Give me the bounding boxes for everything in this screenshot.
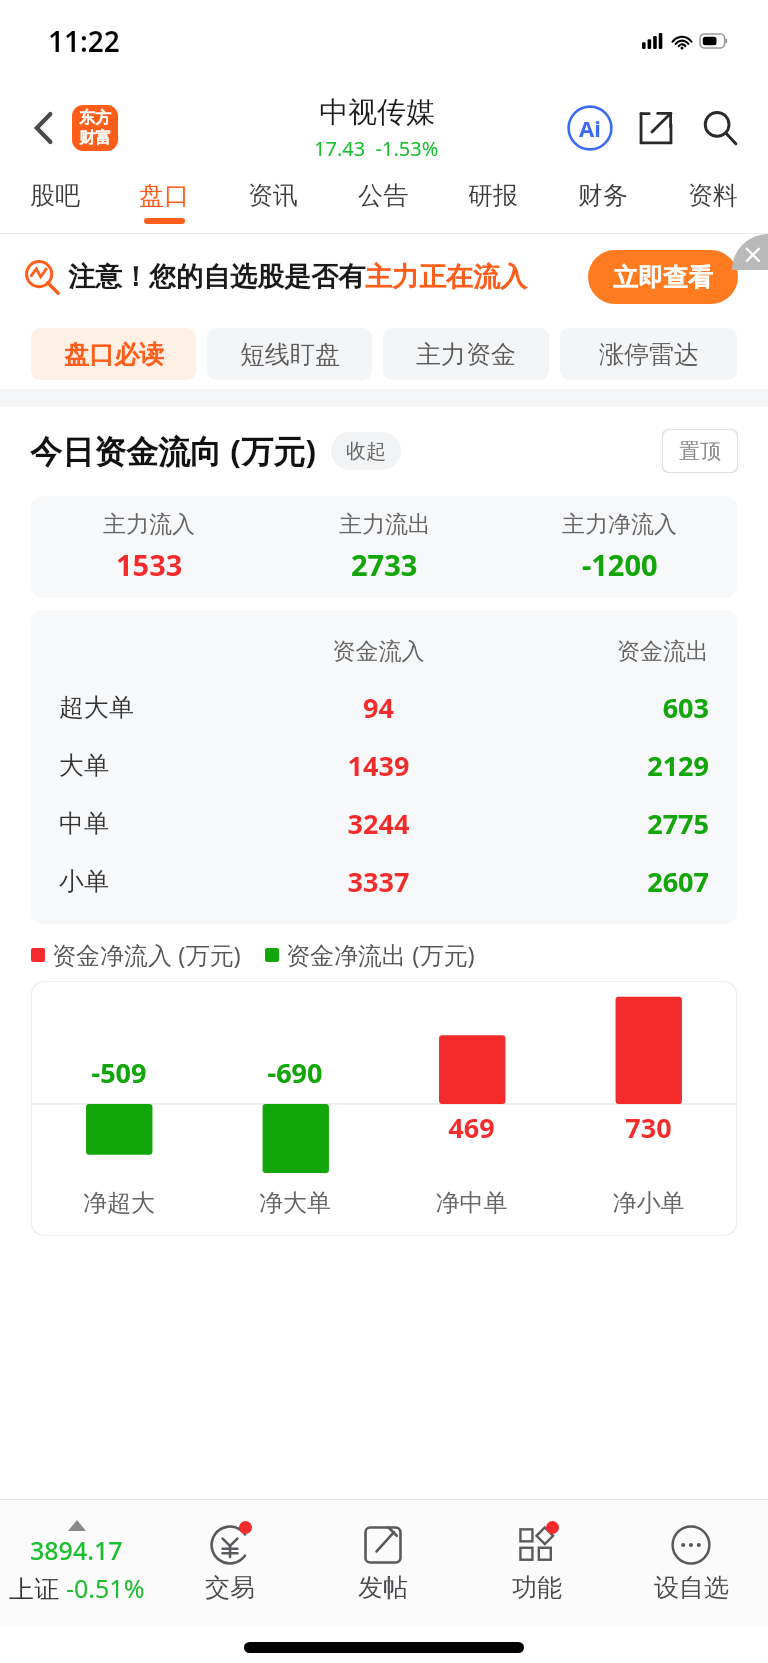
staticText: 净超大 <box>31 1188 207 1218</box>
button[interactable]: 发帖 <box>306 1500 460 1625</box>
staticText: -1200 <box>582 545 658 584</box>
staticText: 收起 <box>346 439 386 464</box>
staticText: -690 <box>207 1054 383 1091</box>
staticText: 上证 <box>9 1571 66 1605</box>
staticText: 股吧 <box>30 180 80 211</box>
button[interactable]: 股吧 <box>0 170 109 233</box>
staticText: 中单 <box>59 808 265 839</box>
staticText: 2129 <box>492 747 709 784</box>
button[interactable]: 资金流入 <box>31 610 737 924</box>
staticText: 94 <box>265 689 492 726</box>
staticText: 研报 <box>468 180 518 211</box>
staticText: 交易 <box>205 1572 255 1603</box>
button[interactable]: 资料 <box>658 170 768 233</box>
button[interactable]: Back <box>22 106 66 150</box>
button[interactable]: 盘口 <box>109 170 218 233</box>
staticText: 公告 <box>358 180 408 211</box>
button[interactable]: 立即查看 <box>588 250 738 304</box>
button[interactable]: 公告 <box>328 170 438 233</box>
staticText: 今日资金流向 (万元) <box>30 429 317 473</box>
button[interactable]: 3894.17 <box>0 1500 153 1625</box>
button[interactable]: 涨停雷达 <box>560 328 737 380</box>
staticText: Ai <box>579 113 601 143</box>
staticText: 1533 <box>116 545 183 584</box>
staticText: 东方 <box>79 108 111 128</box>
staticText: 2607 <box>492 863 709 900</box>
staticText: 资金净流出 (万元) <box>286 938 475 971</box>
staticText: 11:22 <box>48 22 120 60</box>
button[interactable]: 财务 <box>548 170 658 233</box>
staticText: 1439 <box>265 747 492 784</box>
button[interactable]: 收起 <box>331 432 401 470</box>
button[interactable]: 资讯 <box>218 170 328 233</box>
staticText: -509 <box>31 1054 207 1091</box>
button[interactable]: Close <box>732 234 768 270</box>
staticText: 大单 <box>59 750 265 781</box>
staticText: 3337 <box>265 863 492 900</box>
button[interactable]: AI assistant <box>564 102 616 154</box>
staticText: 立即查看 <box>613 262 713 293</box>
staticText: 净小单 <box>560 1188 737 1218</box>
button[interactable]: Share <box>630 102 682 154</box>
button[interactable]: 置顶 <box>662 429 738 473</box>
button[interactable]: 功能 <box>460 1500 614 1625</box>
staticText: 2775 <box>492 805 709 842</box>
button[interactable]: 短线盯盘 <box>207 328 372 380</box>
staticText: 资料 <box>688 180 738 211</box>
staticText: 设自选 <box>654 1572 729 1603</box>
staticText: 超大单 <box>59 692 265 723</box>
button[interactable]: 交易 <box>153 1500 306 1625</box>
staticText: 3244 <box>265 805 492 842</box>
staticText: 发帖 <box>358 1572 408 1603</box>
button[interactable]: -509 <box>31 981 737 1236</box>
button[interactable]: 设自选 <box>614 1500 768 1625</box>
staticText: 17.43 -1.53% <box>314 135 439 162</box>
staticText: 净大单 <box>207 1188 383 1218</box>
staticText: 730 <box>560 1109 737 1146</box>
staticText: 短线盯盘 <box>240 339 340 370</box>
staticText: 资金流入 <box>265 637 492 666</box>
staticText: 注意！您的自选股是否有 <box>68 260 365 294</box>
staticText: 功能 <box>512 1572 562 1603</box>
staticText: -0.51% <box>66 1571 145 1605</box>
staticText: 盘口必读 <box>64 339 164 370</box>
staticText: 涨停雷达 <box>599 339 699 370</box>
staticText: 净中单 <box>383 1188 560 1218</box>
staticText: 2733 <box>351 545 418 584</box>
staticText: 小单 <box>59 866 265 897</box>
button[interactable]: East Money <box>72 105 118 151</box>
staticText: 资讯 <box>248 180 298 211</box>
staticText: 资金流出 <box>492 637 709 666</box>
staticText: 主力资金 <box>416 339 516 370</box>
staticText: 主力正在流入 <box>365 260 527 294</box>
staticText: 中视传媒 <box>319 94 435 131</box>
staticText: 财富 <box>79 128 111 148</box>
staticText: 主力流出 <box>339 510 431 539</box>
staticText: 盘口 <box>139 180 189 211</box>
button[interactable]: 盘口必读 <box>31 328 196 380</box>
button[interactable]: 主力资金 <box>383 328 549 380</box>
staticText: 主力流入 <box>103 510 195 539</box>
staticText: 置顶 <box>679 438 721 464</box>
button[interactable]: 主力流入 <box>31 496 737 598</box>
staticText: 主力净流入 <box>562 510 677 539</box>
staticText: 469 <box>383 1109 560 1146</box>
staticText: 3894.17 <box>30 1533 123 1567</box>
staticText: 603 <box>492 689 709 726</box>
staticText: 财务 <box>578 180 628 211</box>
button[interactable]: Search <box>694 102 746 154</box>
button[interactable]: 研报 <box>438 170 548 233</box>
staticText: 资金净流入 (万元) <box>52 938 241 971</box>
